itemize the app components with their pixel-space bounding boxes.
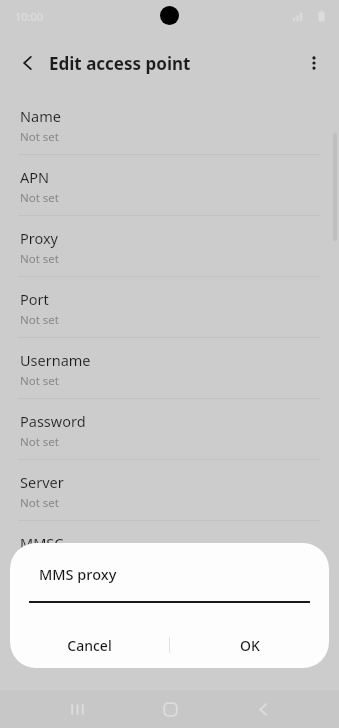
staticText: Proxy [20, 228, 59, 248]
staticText: Username [20, 350, 91, 370]
staticText: OK [240, 636, 260, 655]
staticText: Port [20, 289, 49, 309]
staticText: Name [20, 106, 61, 126]
button[interactable]: Proxy [0, 216, 339, 277]
button[interactable]: APN [0, 155, 339, 216]
staticText: Not set [20, 373, 59, 389]
staticText: Not set [20, 434, 59, 450]
staticText: 10:00 [15, 9, 44, 24]
button[interactable]: More options [295, 44, 333, 82]
staticText: Not set [20, 556, 59, 572]
staticText: MMSC [20, 533, 64, 553]
button[interactable]: MMSC [0, 521, 339, 582]
staticText: APN [20, 167, 50, 187]
staticText: Not set [20, 129, 59, 145]
staticText: Not set [20, 190, 59, 206]
button[interactable]: Server [0, 460, 339, 521]
button[interactable]: Name [0, 94, 339, 155]
button[interactable]: Username [0, 338, 339, 399]
button[interactable]: Password [0, 399, 339, 460]
staticText: Edit access point [49, 52, 191, 75]
staticText: Cancel [67, 636, 112, 655]
staticText: Password [20, 411, 86, 431]
staticText: Not set [20, 495, 59, 511]
staticText: Server [20, 472, 64, 492]
button[interactable]: Port [0, 277, 339, 338]
button[interactable]: Cancel [10, 622, 169, 668]
button[interactable]: Home [149, 690, 191, 728]
button[interactable]: OK [170, 622, 329, 668]
staticText: Not set [20, 251, 59, 267]
button[interactable]: Recent apps [56, 690, 98, 728]
button[interactable]: Navigate up [10, 45, 46, 81]
staticText: MMS proxy [39, 564, 117, 584]
staticText: MMS proxy [20, 594, 97, 614]
staticText: Not set [20, 312, 59, 328]
button[interactable]: MMS proxy [0, 582, 339, 643]
